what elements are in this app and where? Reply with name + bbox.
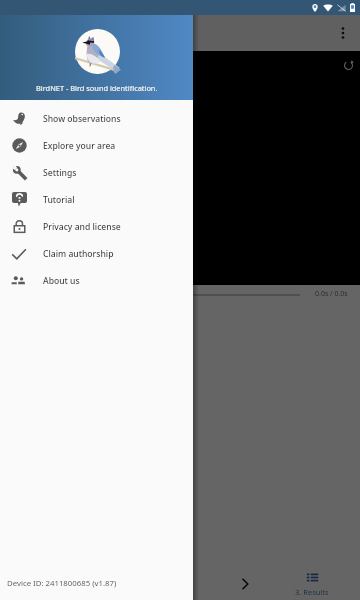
staticText: Claim authorship (43, 248, 114, 260)
button[interactable]: About us (0, 267, 193, 294)
staticText: Device ID: 2411800685 (v1.87) (7, 578, 117, 589)
button[interactable] (10, 290, 300, 299)
button[interactable]: More options (331, 21, 355, 45)
button[interactable]: Next page (215, 568, 275, 600)
staticText: 3. Results (295, 587, 329, 597)
button[interactable]: Privacy and license (0, 213, 193, 240)
staticText: About us (43, 275, 80, 287)
button[interactable]: Settings (0, 159, 193, 186)
staticText: BirdNET - Bird sound identification. (36, 83, 158, 93)
staticText: 0.0s / 0.0s (315, 289, 348, 299)
staticText: Privacy and license (43, 221, 121, 233)
button[interactable]: Tutorial (0, 186, 193, 213)
button[interactable]: 3. Results (275, 568, 349, 600)
staticText: Explore your area (43, 140, 116, 152)
button[interactable]: Claim authorship (0, 240, 193, 267)
staticText: Settings (43, 167, 77, 179)
button[interactable]: Explore your area (0, 132, 193, 159)
button[interactable]: 1. Record (0, 568, 120, 600)
button[interactable]: Refresh (337, 54, 359, 76)
staticText: Tutorial (43, 194, 75, 206)
button[interactable]: Show observations (0, 105, 193, 132)
staticText: Show observations (43, 113, 121, 125)
